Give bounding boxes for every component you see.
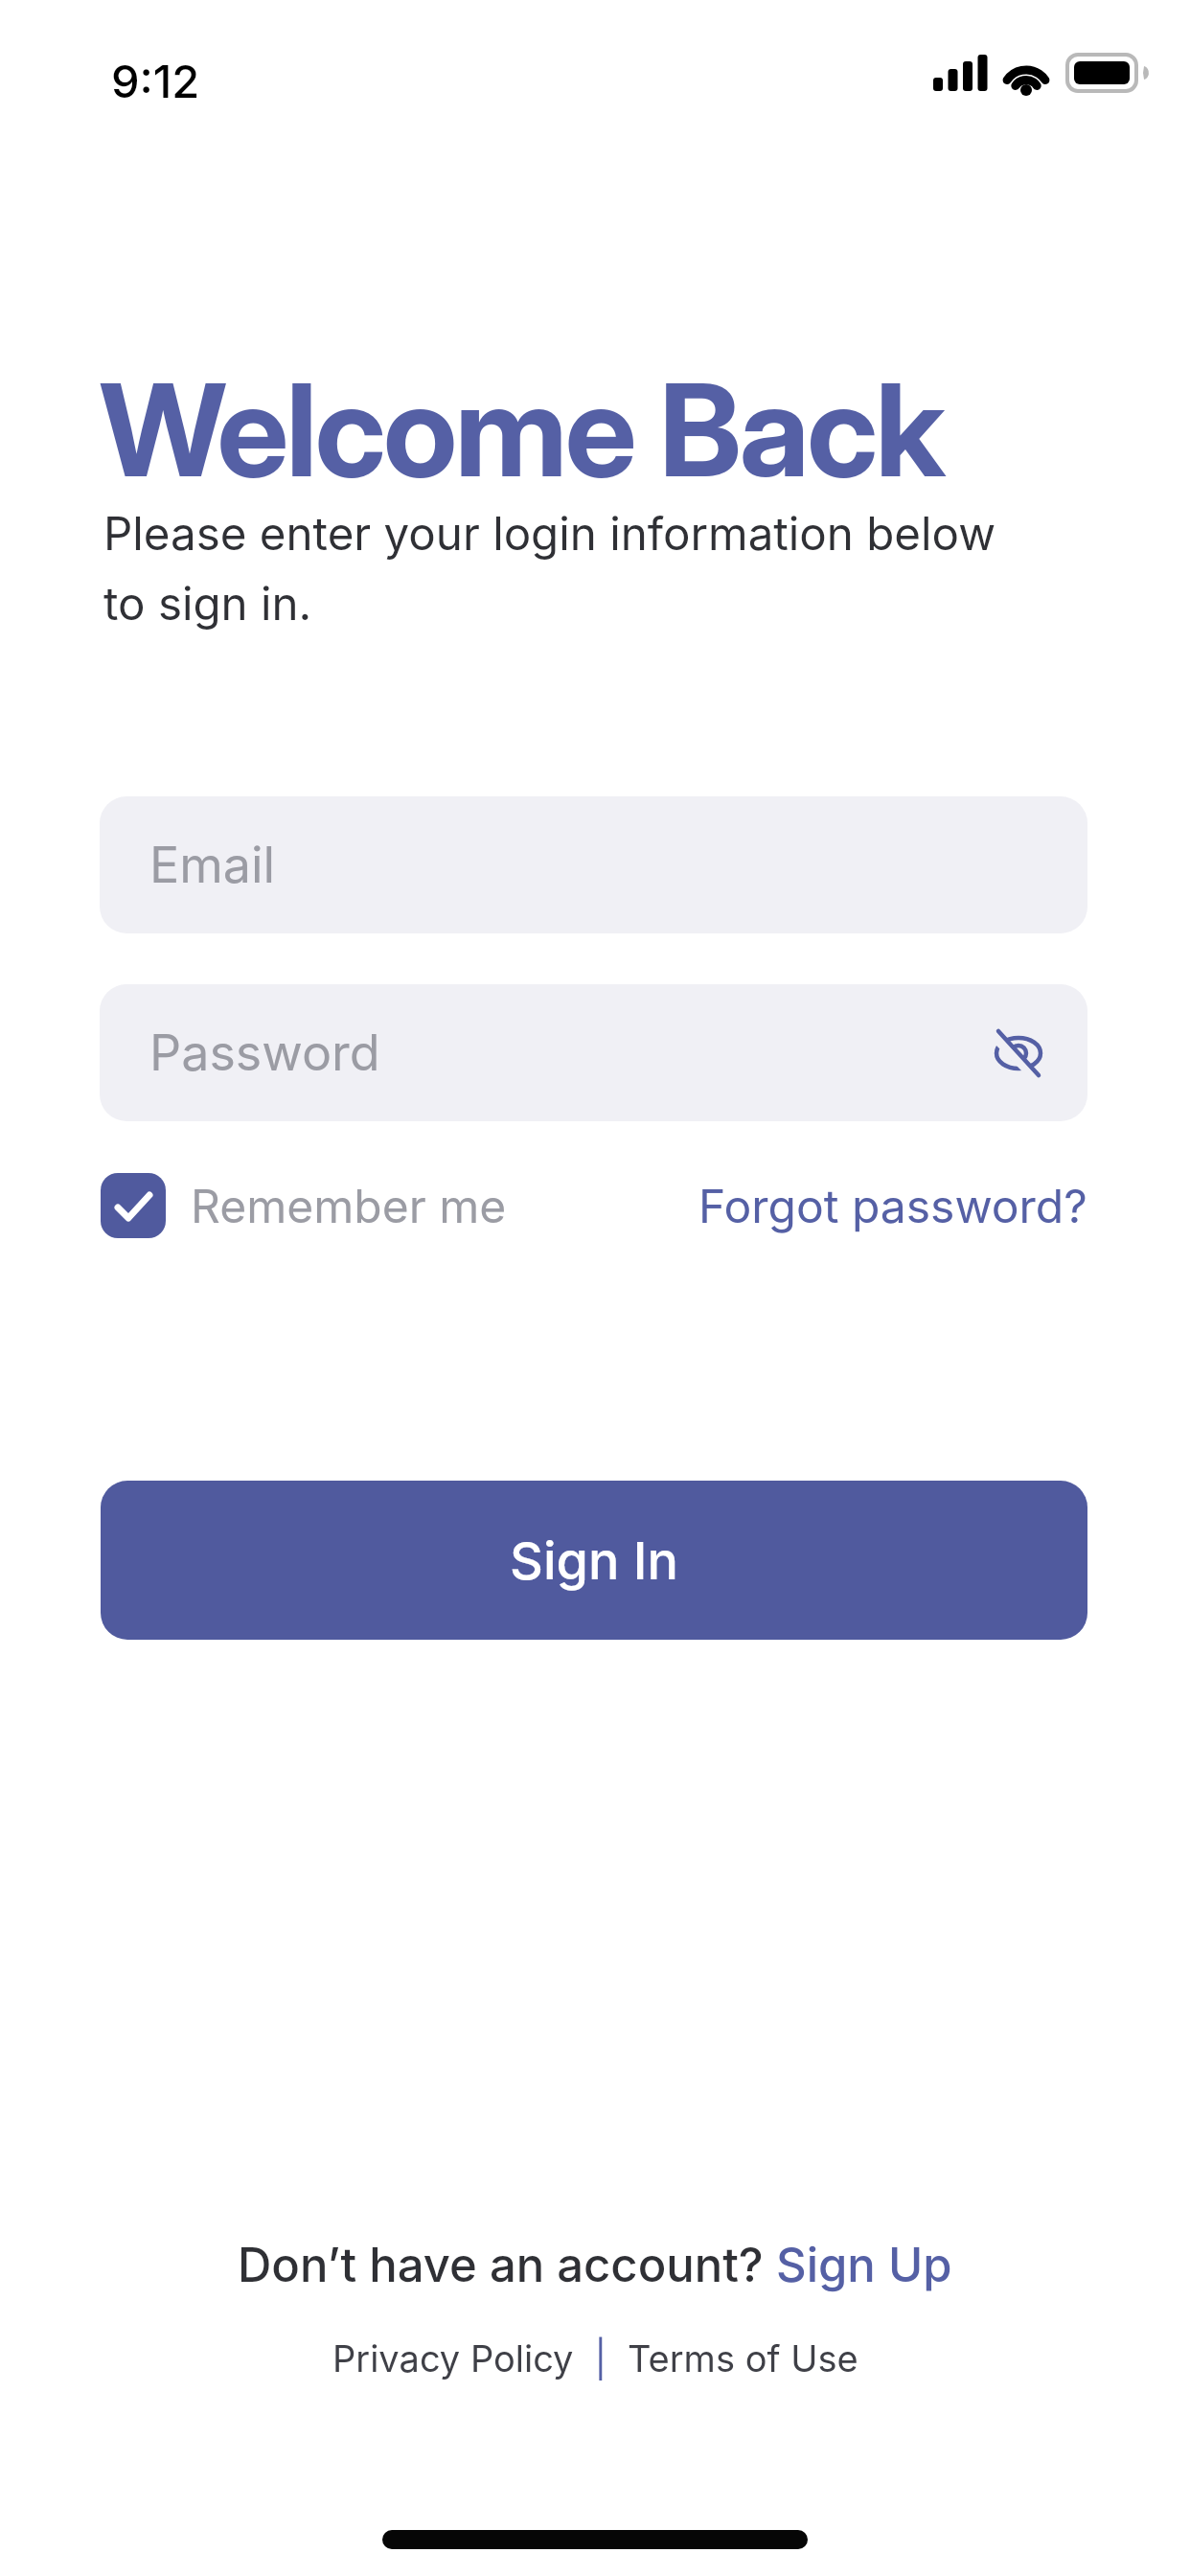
staticText: Don’t have an account? xyxy=(238,2237,776,2293)
button[interactable]: Privacy Policy xyxy=(332,2336,574,2380)
button[interactable]: Email xyxy=(100,796,1087,933)
button[interactable]: Forgot password? xyxy=(698,1178,1087,1233)
staticText: Remember me xyxy=(191,1178,507,1233)
staticText: Sign In xyxy=(510,1529,679,1592)
staticText: | xyxy=(574,2336,628,2380)
staticText: Please enter your login information belo… xyxy=(103,506,996,632)
button[interactable] xyxy=(101,1173,166,1238)
button[interactable]: Sign In xyxy=(101,1481,1087,1640)
button[interactable]: Password xyxy=(100,984,1087,1121)
button[interactable]: Sign Up xyxy=(776,2237,952,2293)
staticText: Password xyxy=(149,1023,380,1083)
staticText: Welcome Back xyxy=(100,353,944,507)
button[interactable]: Terms of Use xyxy=(628,2336,858,2380)
staticText: 9:12 xyxy=(111,54,200,108)
staticText: Email xyxy=(149,835,276,895)
